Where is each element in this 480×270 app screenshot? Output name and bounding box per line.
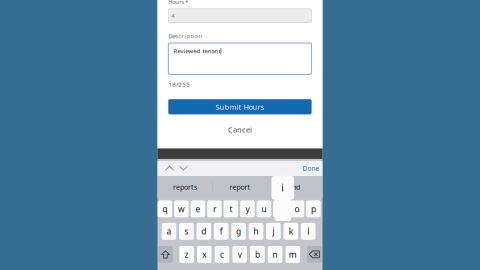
- staticText: b: [255, 249, 260, 260]
- staticText: o: [294, 203, 299, 215]
- button[interactable]: k: [283, 223, 298, 240]
- staticText: r: [213, 203, 216, 215]
- staticText: reports: [173, 182, 197, 192]
- staticText: t: [229, 203, 232, 215]
- staticText: s: [184, 226, 188, 237]
- button[interactable]: i: [273, 200, 288, 217]
- staticText: Submit Hours: [215, 102, 264, 112]
- button[interactable]: Previous field: [162, 161, 176, 176]
- button[interactable]: Next field: [176, 161, 190, 176]
- staticText: p: [311, 203, 316, 215]
- button[interactable]: Cancel: [168, 124, 312, 136]
- button[interactable]: p: [306, 200, 321, 217]
- staticText: q: [162, 203, 167, 215]
- staticText: c: [220, 249, 224, 260]
- staticText: a: [166, 226, 171, 237]
- staticText: i: [281, 181, 284, 194]
- staticText: e: [195, 203, 200, 215]
- button[interactable]: o: [290, 200, 304, 217]
- staticText: z: [185, 249, 189, 260]
- button[interactable]: j: [266, 223, 281, 240]
- button[interactable]: g: [231, 223, 246, 240]
- staticText: Cancel: [228, 125, 252, 135]
- staticText: j: [272, 226, 274, 237]
- button[interactable]: b: [250, 246, 265, 263]
- button[interactable]: n: [268, 246, 282, 263]
- staticText: l: [307, 226, 309, 237]
- staticText: m: [289, 249, 297, 260]
- button[interactable]: x: [197, 246, 212, 263]
- staticText: Reviewed tenant: [173, 47, 220, 55]
- button[interactable]: Submit Hours: [168, 99, 312, 114]
- staticText: k: [289, 226, 293, 237]
- staticText: report: [229, 182, 250, 192]
- button[interactable]: t: [224, 200, 238, 217]
- button[interactable]: c: [215, 246, 229, 263]
- button[interactable]: report: [212, 176, 267, 198]
- staticText: Hours *: [168, 0, 188, 6]
- button[interactable]: reports: [157, 176, 212, 198]
- staticText: w: [178, 203, 185, 215]
- staticText: ind: [290, 182, 300, 192]
- button[interactable]: ind: [267, 176, 322, 198]
- staticText: g: [236, 226, 241, 237]
- button[interactable]: Delete: [307, 246, 322, 263]
- staticText: f: [220, 226, 223, 237]
- button[interactable]: q: [158, 200, 172, 217]
- staticText: 18/255: [168, 80, 190, 89]
- staticText: d: [201, 226, 206, 237]
- button[interactable]: r: [207, 200, 222, 217]
- staticText: u: [261, 203, 266, 215]
- button[interactable]: z: [179, 246, 194, 263]
- staticText: v: [238, 249, 242, 260]
- button[interactable]: d: [196, 223, 211, 240]
- staticText: 4: [171, 11, 175, 20]
- button[interactable]: e: [191, 200, 205, 217]
- button[interactable]: y: [240, 200, 255, 217]
- staticText: y: [245, 203, 249, 215]
- staticText: Done: [302, 164, 319, 173]
- button[interactable]: v: [232, 246, 247, 263]
- button[interactable]: f: [214, 223, 228, 240]
- button[interactable]: m: [285, 246, 300, 263]
- staticText: n: [273, 249, 278, 260]
- button[interactable]: s: [179, 223, 194, 240]
- button[interactable]: a: [162, 223, 176, 240]
- button[interactable]: Done: [302, 161, 322, 176]
- staticText: h: [253, 226, 258, 237]
- button[interactable]: Shift: [158, 246, 173, 263]
- staticText: x: [202, 249, 206, 260]
- button[interactable]: u: [257, 200, 271, 217]
- staticText: Description: [168, 32, 202, 40]
- button[interactable]: w: [174, 200, 189, 217]
- button[interactable]: h: [249, 223, 263, 240]
- button[interactable]: l: [301, 223, 315, 240]
